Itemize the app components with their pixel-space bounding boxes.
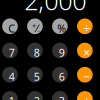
button[interactable]: % [52,18,68,34]
staticText: 4 [9,70,15,84]
staticText: 1 [9,94,15,100]
button[interactable]: 5 [27,67,43,83]
button[interactable]: 3 [52,91,68,100]
staticText: 6 [59,70,65,84]
staticText: 8 [34,45,40,60]
staticText: 2 [34,94,40,100]
staticText: 5 [34,70,40,84]
staticText: × [83,44,90,60]
button[interactable]: ÷ [77,18,93,34]
staticText: 3 [59,94,65,100]
button[interactable]: C [2,18,18,34]
staticText: C [8,21,15,35]
staticText: 7 [9,45,15,60]
button[interactable]: 1 [2,91,18,100]
staticText: − [83,69,90,85]
staticText: 9 [59,45,65,60]
staticText: ÷ [83,20,90,36]
button[interactable]: + [77,91,93,100]
button[interactable]: 9 [52,43,68,58]
button[interactable]: − [77,67,93,83]
button[interactable]: 6 [52,67,68,83]
staticText: 2,000 [24,0,86,17]
button[interactable]: 7 [2,43,18,58]
button[interactable]: 2 [27,91,43,100]
button[interactable]: ⁺⁄₋ [27,18,43,34]
staticText: + [83,93,90,100]
button[interactable]: × [77,43,93,58]
staticText: ⁺⁄₋ [32,21,41,35]
button[interactable]: 8 [27,43,43,58]
button[interactable]: 4 [2,67,18,83]
staticText: % [57,21,66,35]
